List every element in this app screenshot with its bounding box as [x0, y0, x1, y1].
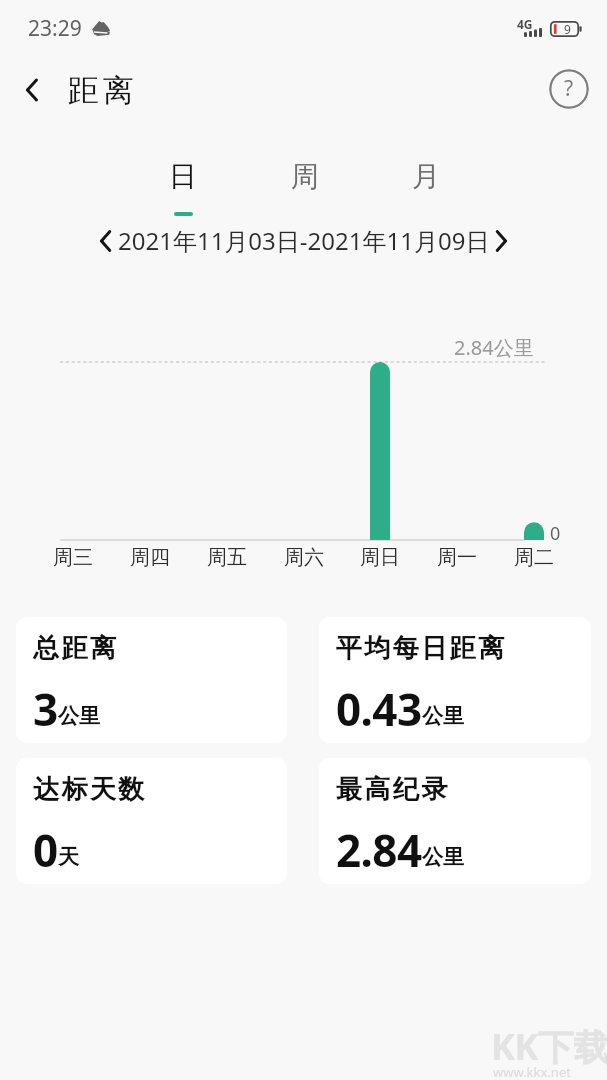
- staticText: 9: [564, 21, 571, 37]
- staticText: 2021年11月03日-2021年11月09日: [118, 224, 490, 257]
- staticText: 周五: [191, 545, 263, 570]
- staticText: 达标天数: [33, 773, 147, 806]
- staticText: KK下载: [491, 1022, 607, 1071]
- button[interactable]: 周: [263, 155, 347, 220]
- other: Back: [18, 76, 46, 104]
- staticText: 公里: [422, 844, 464, 870]
- staticText: 2.84公里: [454, 334, 534, 361]
- button[interactable]: Help: [549, 69, 589, 109]
- staticText: 距离: [66, 71, 136, 110]
- button[interactable]: 最高纪录: [319, 758, 591, 884]
- staticText: 周一: [421, 545, 493, 570]
- staticText: 周四: [114, 545, 186, 570]
- button[interactable]: 达标天数: [16, 758, 287, 884]
- staticText: 0.43: [336, 679, 422, 739]
- staticText: 平均每日距离: [336, 632, 507, 665]
- staticText: 0: [550, 521, 561, 546]
- staticText: 公里: [422, 703, 464, 729]
- staticText: 日: [169, 159, 197, 194]
- button[interactable]: Previous week: [90, 226, 120, 256]
- staticText: 3: [33, 679, 58, 739]
- staticText: 公里: [58, 703, 100, 729]
- button[interactable]: Back: [0, 62, 150, 118]
- staticText: ?: [564, 74, 574, 103]
- staticText: 天: [58, 844, 79, 870]
- staticText: 最高纪录: [336, 773, 450, 806]
- staticText: 0: [33, 820, 58, 880]
- staticText: www.kkx.net: [493, 1063, 571, 1080]
- button[interactable]: 日: [141, 155, 225, 220]
- button[interactable]: 总距离: [16, 617, 287, 743]
- staticText: 周: [291, 159, 319, 194]
- button[interactable]: 月: [384, 155, 468, 220]
- staticText: 周日: [344, 545, 416, 570]
- staticText: 23:29: [28, 14, 82, 43]
- staticText: 周三: [37, 545, 109, 570]
- staticText: 周二: [498, 545, 570, 570]
- staticText: 4G: [517, 16, 533, 32]
- staticText: 周六: [268, 545, 340, 570]
- staticText: 总距离: [33, 632, 119, 665]
- staticText: 2.84: [336, 820, 422, 880]
- button[interactable]: 平均每日距离: [319, 617, 591, 743]
- staticText: 月: [412, 159, 440, 194]
- button[interactable]: Next week: [487, 226, 517, 256]
